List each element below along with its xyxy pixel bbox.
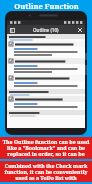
button[interactable] xyxy=(7,41,85,47)
staticText: The Outline function can be used like a … xyxy=(2,138,90,158)
button[interactable]: The Outline function can be used like a … xyxy=(0,137,92,159)
staticText: Outline (10) xyxy=(33,27,59,33)
staticText: Outline Function xyxy=(14,1,79,11)
button[interactable] xyxy=(7,96,85,102)
button[interactable] xyxy=(7,89,85,94)
button[interactable]: Combined with the Check mark function, i… xyxy=(0,161,92,182)
button[interactable] xyxy=(7,75,85,81)
staticText: Combined with the Check mark function, i… xyxy=(2,162,90,181)
button[interactable] xyxy=(7,34,85,39)
button[interactable]: Menu xyxy=(9,27,15,33)
button[interactable] xyxy=(7,58,85,64)
button[interactable]: Close xyxy=(77,27,83,33)
button[interactable] xyxy=(7,110,85,115)
